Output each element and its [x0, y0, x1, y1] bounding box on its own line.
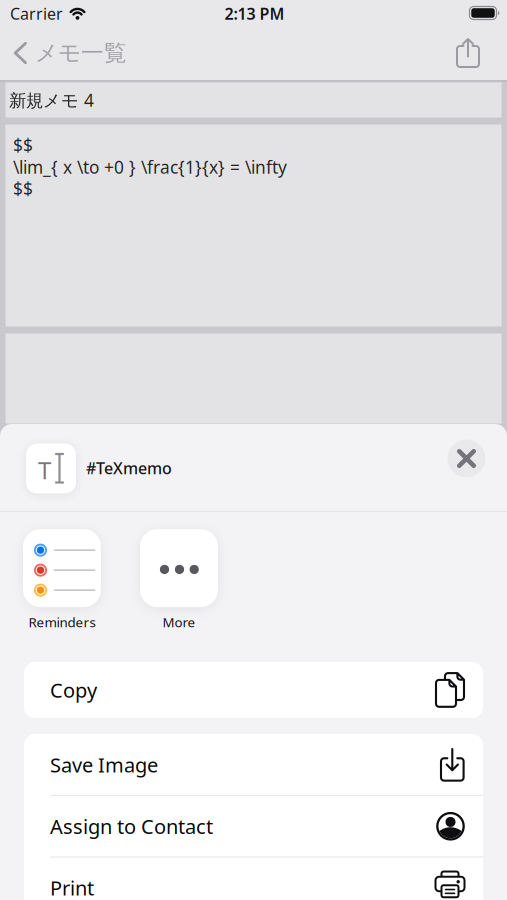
button[interactable]: Copy — [24, 662, 483, 718]
staticText: Copy — [50, 677, 97, 703]
staticText: \lim_{ x \to +0 } \frac{1}{x} = \infty — [13, 155, 287, 178]
staticText: 新規メモ 4 — [9, 88, 94, 111]
button[interactable]: More — [140, 529, 218, 631]
staticText: メモ一覧 — [35, 39, 127, 67]
staticText: 2:13 PM — [224, 3, 284, 24]
button[interactable]: Assign to Contact — [24, 795, 483, 857]
staticText: Carrier — [10, 3, 63, 24]
staticText: $$ — [13, 177, 33, 200]
button[interactable]: Reminders — [23, 529, 101, 631]
staticText: Reminders — [28, 613, 95, 631]
staticText: $$ — [13, 133, 33, 156]
staticText: Assign to Contact — [50, 813, 213, 840]
button[interactable]: Save Image — [24, 734, 483, 795]
button[interactable]: Print — [24, 857, 483, 900]
staticText: #TeXmemo — [86, 457, 172, 479]
button[interactable]: メモ一覧 — [13, 39, 127, 67]
button[interactable] — [447, 439, 485, 477]
staticText: Save Image — [50, 751, 158, 778]
staticText: T — [38, 454, 51, 486]
button[interactable] — [455, 37, 481, 68]
staticText: Print — [50, 874, 94, 900]
staticText: More — [162, 613, 195, 631]
